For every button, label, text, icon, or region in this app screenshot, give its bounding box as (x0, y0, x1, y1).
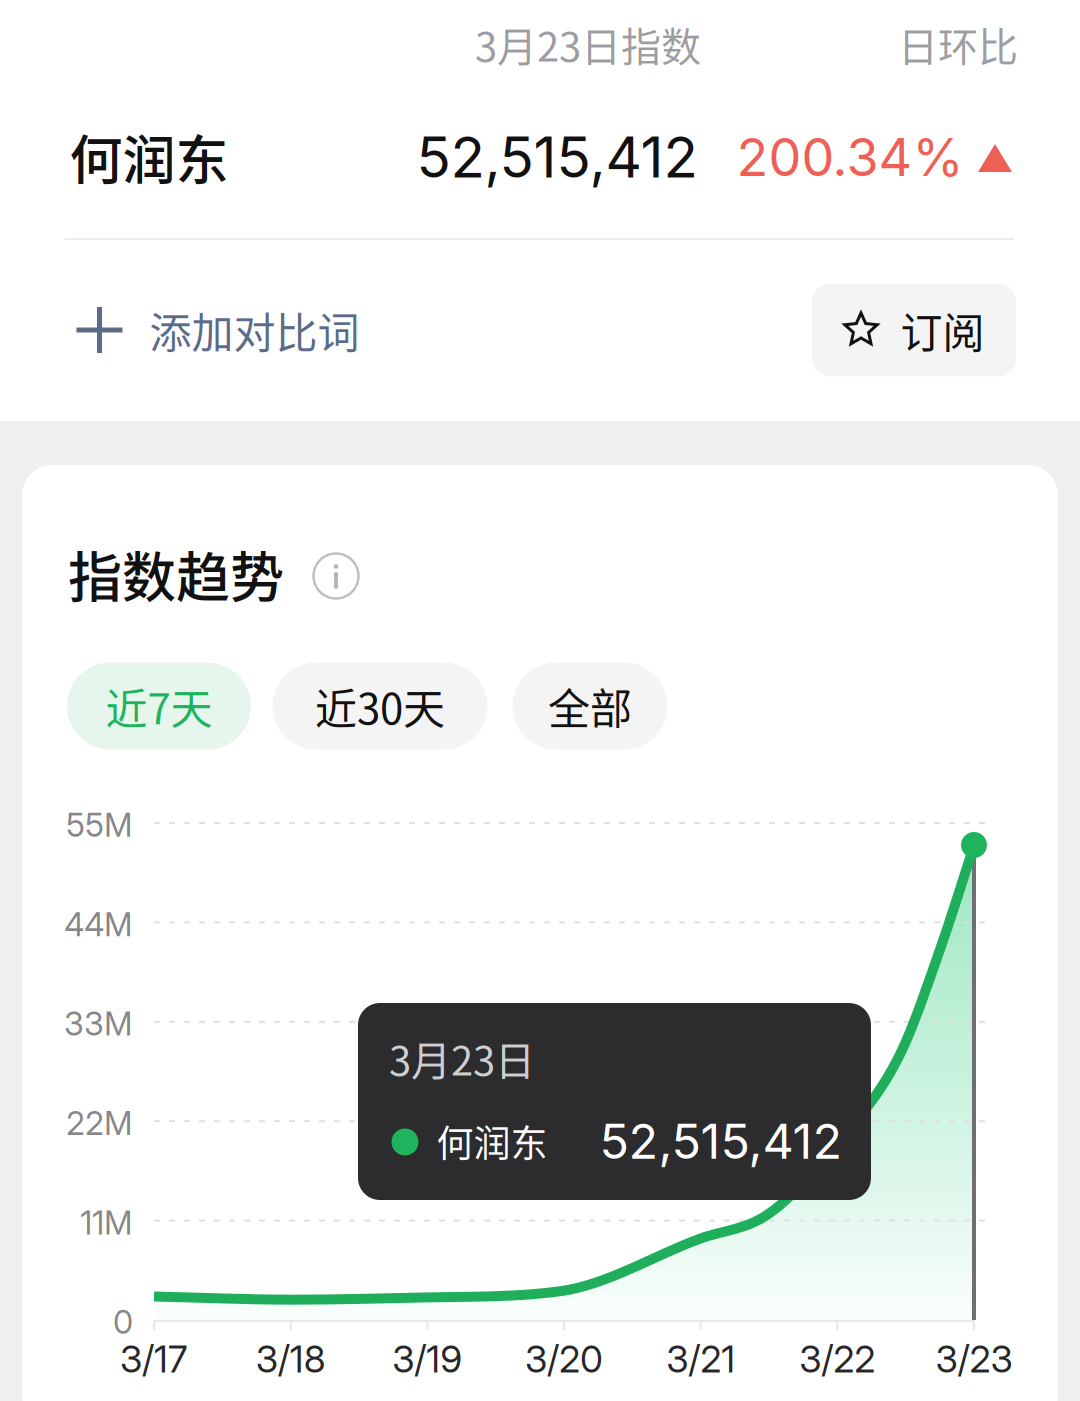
button[interactable]: 订阅 (812, 283, 1016, 376)
staticText: 52,515,412 (599, 1112, 842, 1170)
staticText: 3/18 (256, 1337, 326, 1381)
staticText: 近7天 (105, 676, 212, 736)
staticText: 指数趋势 (68, 535, 284, 613)
staticText: 3月23日 (389, 1029, 535, 1087)
staticText: 200.34% (736, 125, 963, 188)
staticText: 近30天 (315, 676, 445, 736)
staticText: 订阅 (900, 300, 984, 360)
button[interactable]: 近30天 (272, 662, 487, 749)
staticText: 3/19 (392, 1337, 462, 1381)
staticText: 3月23日指数 (475, 15, 701, 73)
button[interactable]: 添加对比词 (54, 276, 381, 384)
staticText: 33M (64, 1004, 133, 1043)
staticText: 3/23 (935, 1337, 1012, 1381)
staticText: 3/21 (666, 1337, 735, 1381)
staticText: 3/17 (120, 1337, 188, 1381)
staticText: 44M (64, 905, 133, 944)
button[interactable]: 全部 (512, 662, 667, 749)
staticText: 52,515,412 (416, 123, 697, 191)
staticText: 11M (80, 1203, 133, 1242)
staticText: 全部 (548, 676, 632, 736)
staticText: 55M (66, 805, 133, 845)
staticText: 添加对比词 (149, 300, 359, 360)
staticText: 日环比 (898, 15, 1018, 73)
staticText: 何润东 (436, 1114, 547, 1168)
button[interactable]: 近7天 (67, 662, 251, 749)
staticText: 0 (113, 1302, 133, 1342)
staticText: 何润东 (69, 119, 228, 195)
staticText: 22M (66, 1103, 133, 1143)
staticText: 3/20 (525, 1337, 603, 1381)
staticText: 3/22 (799, 1337, 875, 1381)
